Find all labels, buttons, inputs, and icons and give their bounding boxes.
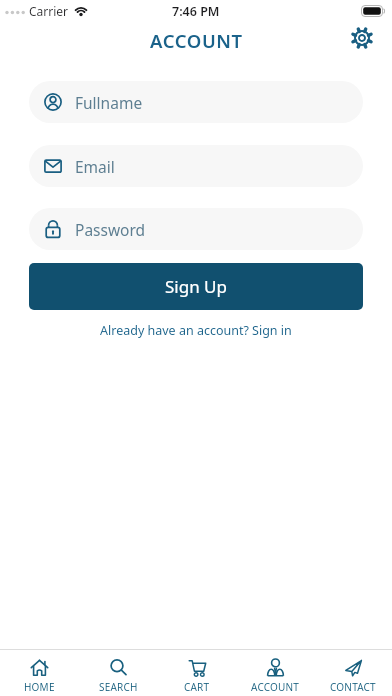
staticText: Fullname [75, 92, 143, 113]
button[interactable]: CONTACT [314, 650, 392, 696]
staticText: 7:46 PM [172, 3, 220, 20]
button[interactable]: SEARCH [79, 650, 158, 696]
button[interactable]: HOME [0, 650, 79, 696]
button[interactable]: Email [29, 145, 363, 187]
staticText: Sign Up [165, 275, 227, 298]
button[interactable]: Fullname [29, 81, 363, 123]
button[interactable]: Already have an account? Sign in [100, 322, 292, 339]
staticText: SEARCH [99, 680, 138, 694]
staticText: Password [75, 219, 146, 240]
staticText: ACCOUNT [150, 28, 243, 53]
staticText: Carrier [29, 3, 69, 19]
button[interactable] [345, 21, 379, 55]
button[interactable]: CART [158, 650, 236, 696]
staticText: CART [184, 680, 210, 694]
button[interactable]: Sign Up [29, 263, 363, 310]
staticText: HOME [24, 680, 55, 694]
staticText: ACCOUNT [251, 680, 300, 694]
staticText: Email [75, 156, 115, 177]
button[interactable]: Password [29, 208, 363, 250]
staticText: Already have an account? Sign in [100, 322, 292, 339]
staticText: CONTACT [330, 680, 376, 694]
button[interactable]: ACCOUNT [236, 650, 314, 696]
